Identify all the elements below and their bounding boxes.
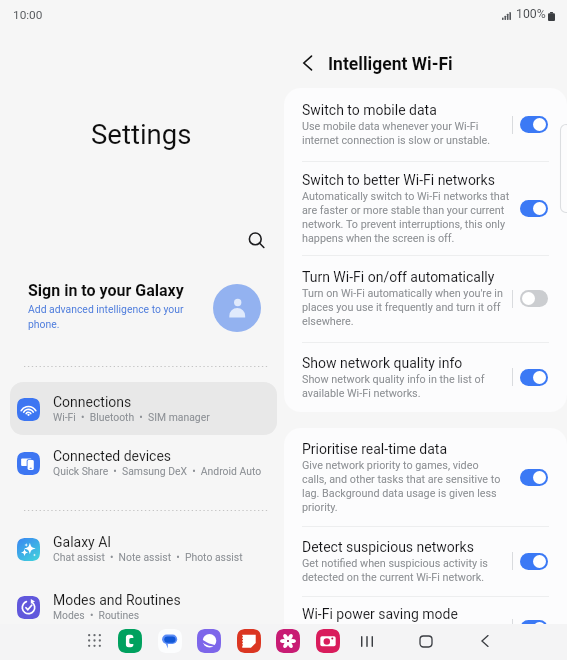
button[interactable]: Prioritise real-time data	[284, 428, 567, 526]
button[interactable]: Galaxy AI	[10, 522, 277, 575]
staticText: Wi-Fi • Bluetooth • SIM manager	[53, 411, 210, 423]
button[interactable]: Messages	[158, 629, 182, 653]
staticText: Add advanced intelligence to your phone.	[28, 303, 204, 331]
staticText: Galaxy AI	[53, 534, 112, 550]
button[interactable]: Notes	[237, 629, 261, 653]
button[interactable]: Internet	[197, 629, 221, 653]
button[interactable]: Connected devices	[10, 436, 277, 489]
button[interactable]: Switch to mobile data	[284, 88, 567, 161]
staticText: Turn Wi-Fi on/off automatically	[302, 269, 495, 285]
staticText: Modes and Routines	[53, 592, 181, 608]
staticText: Wi-Fi power saving mode	[302, 606, 458, 622]
button[interactable]: Wi-Fi power saving mode	[284, 596, 567, 660]
staticText: Prioritise real-time data	[302, 441, 448, 457]
button[interactable]: Modes and Routines	[10, 580, 277, 633]
button[interactable]: On	[520, 116, 548, 133]
button[interactable]: Off	[520, 290, 548, 307]
staticText: Automatically switch to Wi-Fi networks t…	[302, 190, 510, 245]
staticText: Connected devices	[53, 448, 172, 464]
staticText: Switch to better Wi-Fi networks	[302, 172, 495, 188]
staticText: Detect suspicious networks	[302, 539, 474, 555]
button[interactable]: Switch to better Wi-Fi networks	[284, 161, 567, 255]
button[interactable]: Camera	[316, 629, 340, 653]
button[interactable]: Home	[414, 629, 438, 653]
staticText: Quick Share • Samsung DeX • Android Auto	[53, 465, 262, 477]
button[interactable]: Intelligent Wi-Fi	[328, 52, 453, 76]
staticText: Use mobile data whenever your Wi-Fi inte…	[302, 120, 491, 147]
button[interactable]: On	[520, 469, 548, 486]
button[interactable]: Navigate back	[293, 48, 323, 78]
button[interactable]: On	[520, 620, 548, 637]
staticText: Intelligent Wi-Fi	[328, 54, 453, 75]
staticText: Sign in to your Galaxy	[28, 281, 184, 300]
button[interactable]: Show network quality info	[284, 342, 567, 412]
button[interactable]: Galaxy Store	[276, 629, 300, 653]
staticText: Connections	[53, 394, 132, 410]
staticText: Chat assist • Note assist • Photo assist	[53, 551, 243, 563]
button[interactable]: Back	[473, 629, 497, 653]
staticText: Modes • Routines	[53, 609, 140, 621]
staticText: Show network quality info	[302, 355, 463, 371]
staticText: Show network quality info in the list of…	[302, 373, 485, 400]
button[interactable]: Detect suspicious networks	[284, 526, 567, 596]
button[interactable]: Sign in to your Galaxy	[0, 278, 283, 334]
staticText: Reduce battery usage when connected to W…	[302, 624, 488, 651]
staticText: Turn on Wi-Fi automatically when you're …	[302, 287, 503, 328]
staticText: 100%	[516, 7, 546, 21]
button[interactable]: Turn Wi-Fi on/off automatically	[284, 255, 567, 342]
button[interactable]: Connections	[10, 382, 277, 435]
button[interactable]: Apps	[83, 629, 106, 652]
button[interactable]: Phone	[118, 629, 142, 653]
staticText: Get notified when suspicious activity is…	[302, 557, 488, 584]
staticText: Settings	[91, 118, 192, 150]
staticText: Give network priority to games, video ca…	[302, 459, 501, 514]
button[interactable]: Search	[238, 222, 274, 258]
button[interactable]: On	[520, 369, 548, 386]
button[interactable]: On	[520, 553, 548, 570]
button[interactable]: On	[520, 200, 548, 217]
staticText: Switch to mobile data	[302, 102, 437, 118]
button[interactable]: Recent apps	[355, 629, 379, 653]
staticText: 10:00	[13, 8, 43, 22]
